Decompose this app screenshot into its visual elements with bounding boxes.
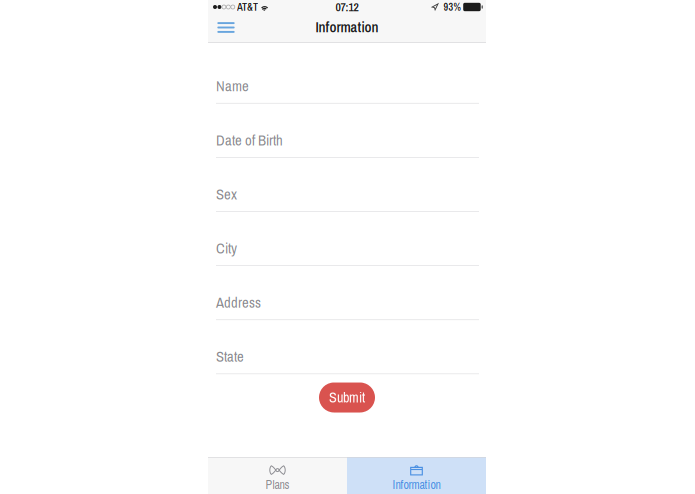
staticText: Information — [392, 477, 440, 493]
button[interactable]: State — [208, 326, 486, 380]
staticText: Sex — [216, 184, 237, 204]
staticText: Plans — [265, 477, 289, 493]
staticText: State — [216, 347, 244, 366]
staticText: AT&T — [237, 0, 258, 14]
button[interactable]: Menu — [208, 14, 244, 43]
staticText: City — [216, 238, 237, 258]
staticText: Information — [315, 17, 378, 37]
staticText: 93% — [444, 0, 461, 14]
staticText: 07:12 — [335, 0, 358, 15]
button[interactable]: Submit — [319, 382, 375, 412]
staticText: Address — [216, 292, 261, 312]
button[interactable]: Name — [208, 56, 486, 110]
button[interactable]: Date of Birth — [208, 110, 486, 164]
button[interactable]: Plans — [208, 457, 347, 494]
staticText: Name — [216, 76, 249, 96]
button[interactable]: Information — [347, 457, 486, 494]
button[interactable]: Address — [208, 272, 486, 326]
button[interactable]: Sex — [208, 164, 486, 218]
staticText: Date of Birth — [216, 130, 283, 150]
button[interactable]: City — [208, 218, 486, 272]
staticText: Submit — [329, 388, 365, 407]
